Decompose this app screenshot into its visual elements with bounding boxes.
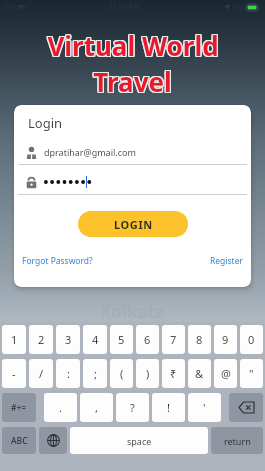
staticText: Virtual World [46, 28, 218, 63]
staticText: ' [203, 400, 206, 415]
staticText: #+= [11, 402, 27, 414]
staticText: 5M [5, 2, 16, 12]
button[interactable]: #+= [2, 393, 36, 422]
staticText: 9 [222, 332, 229, 347]
staticText: 1 [11, 332, 18, 347]
button[interactable]: 7 [162, 325, 185, 354]
staticText: LOGIN [114, 217, 153, 232]
staticText: ( [120, 366, 124, 381]
button[interactable]: 3 [56, 325, 80, 354]
button[interactable]: 4 [83, 325, 107, 354]
button[interactable]: Change keyboard language [39, 427, 67, 454]
staticText: Virtual World [46, 27, 218, 62]
staticText: 4 [92, 332, 99, 347]
staticText: space [127, 435, 152, 447]
staticText: Virtual World [47, 27, 219, 62]
button[interactable]: 6 [136, 325, 159, 354]
staticText: 5 [118, 332, 125, 347]
staticText: Login [28, 114, 63, 132]
staticText: 27% [232, 3, 244, 11]
staticText: Kolkata [100, 300, 166, 323]
staticText: Travel [93, 65, 172, 100]
staticText: / [39, 366, 44, 381]
staticText: 11:03 AM [109, 2, 140, 12]
staticText: Virtual World [48, 27, 220, 62]
staticText: dpratihar@gmail.com [44, 146, 136, 158]
staticText: ? [130, 400, 135, 415]
button[interactable]: @ [214, 359, 237, 388]
staticText: 6 [144, 332, 151, 347]
staticText: 3 [65, 332, 72, 347]
staticText: & [195, 366, 204, 381]
button[interactable]: dpratihar@gmail.com [18, 140, 247, 164]
staticText: @ [221, 366, 231, 381]
button[interactable]: ( [110, 359, 133, 388]
button[interactable]: ? [116, 393, 149, 422]
button[interactable]: - [2, 359, 26, 388]
button[interactable]: & [188, 359, 211, 388]
staticText: ! [167, 400, 170, 415]
staticText: Virtual World [47, 28, 219, 63]
button[interactable]: 5 [110, 325, 133, 354]
staticText: Travel [92, 63, 171, 98]
button[interactable]: 8 [188, 325, 211, 354]
staticText: 7 [170, 332, 177, 347]
button[interactable]: Backspace [229, 393, 263, 422]
staticText: ₹ [170, 366, 177, 381]
button[interactable]: 2 [29, 325, 53, 354]
button[interactable]: ₹ [162, 359, 185, 388]
staticText: , [95, 400, 98, 415]
staticText: 8 [196, 332, 203, 347]
button[interactable]: 9 [214, 325, 237, 354]
staticText: Travel [94, 64, 173, 99]
staticText: Travel [92, 64, 171, 99]
staticText: Virtual World [48, 29, 220, 64]
button[interactable]: . [44, 393, 77, 422]
button[interactable]: ' [188, 393, 221, 422]
staticText: Travel [94, 65, 173, 100]
button[interactable]: ! [152, 393, 185, 422]
staticText: Travel [92, 65, 171, 100]
button[interactable]: ABC [2, 427, 36, 454]
button[interactable]: " [240, 359, 263, 388]
staticText: Virtual World [48, 28, 220, 63]
button[interactable]: , [80, 393, 113, 422]
staticText: ABC [11, 435, 28, 447]
staticText: Forgot Password? [22, 255, 93, 267]
button[interactable]: ; [83, 359, 107, 388]
staticText: - [12, 366, 16, 381]
button[interactable]: ) [136, 359, 159, 388]
staticText: ; [94, 366, 97, 381]
staticText: Travel [93, 63, 172, 98]
staticText: 0 [248, 332, 255, 347]
staticText: return [224, 435, 251, 447]
staticText: Travel [93, 64, 172, 99]
button[interactable]: 1 [2, 325, 26, 354]
button[interactable]: / [29, 359, 53, 388]
button[interactable]: : [56, 359, 80, 388]
staticText: . [59, 400, 62, 415]
button[interactable]: space [70, 427, 208, 454]
staticText: Virtual World [47, 29, 219, 64]
button[interactable]: return [211, 427, 263, 454]
staticText: Register [210, 255, 243, 267]
staticText: Travel [94, 63, 173, 98]
staticText: " [249, 366, 254, 381]
button[interactable]: Forgot Password? [20, 253, 95, 269]
button[interactable]: LOGIN [78, 211, 188, 237]
staticText: Virtual World [46, 29, 218, 64]
staticText: ) [146, 366, 150, 381]
button[interactable]: 0 [240, 325, 263, 354]
button[interactable]: Register [208, 253, 245, 269]
staticText: : [67, 366, 70, 381]
button[interactable] [18, 170, 247, 194]
staticText: 2 [38, 332, 45, 347]
